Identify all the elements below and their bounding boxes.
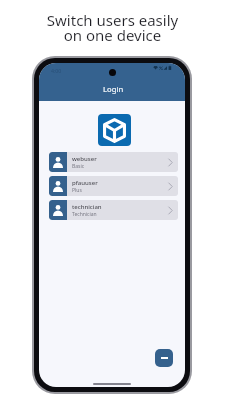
button[interactable]: pfauuser <box>49 176 178 196</box>
staticText: pfauuser <box>72 179 98 187</box>
staticText: Login <box>103 84 124 94</box>
button[interactable]: Add user <box>155 349 173 367</box>
staticText: 4:00 <box>51 67 62 74</box>
button[interactable]: webuser <box>49 152 178 172</box>
staticText: webuser <box>72 155 97 163</box>
staticText: technician <box>72 203 102 211</box>
button[interactable]: technician <box>49 200 178 220</box>
staticText: Technician <box>72 211 97 218</box>
staticText: Plus <box>72 187 82 194</box>
staticText: Basic <box>72 163 85 170</box>
staticText: Switch users easily on one device <box>0 10 225 46</box>
